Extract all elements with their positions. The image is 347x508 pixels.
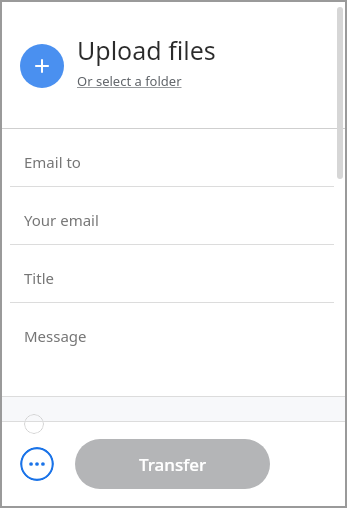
staticText: Or select a folder: [77, 72, 182, 90]
staticText: Email to: [24, 152, 81, 172]
button[interactable]: Message: [2, 303, 345, 391]
staticText: Your email: [24, 210, 99, 230]
button[interactable]: Email to: [2, 129, 345, 187]
button[interactable]: Transfer: [75, 439, 270, 489]
button[interactable]: Title: [2, 245, 345, 303]
staticText: Message: [24, 326, 87, 346]
button[interactable]: Your email: [2, 187, 345, 245]
staticText: Title: [24, 268, 54, 288]
staticText: Upload files: [77, 33, 216, 67]
button[interactable]: Or select a folder: [77, 72, 182, 90]
button[interactable]: Add files: [20, 44, 64, 88]
button[interactable]: More options: [20, 447, 54, 481]
staticText: Transfer: [139, 453, 207, 476]
